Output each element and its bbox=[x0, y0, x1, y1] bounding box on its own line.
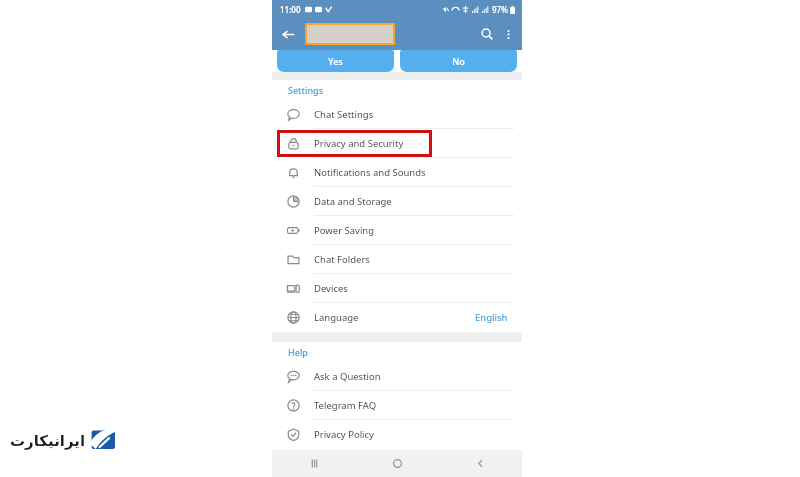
staticText: 97% bbox=[492, 4, 508, 15]
staticText: Chat Folders bbox=[314, 253, 370, 266]
button[interactable]: Chat Folders bbox=[272, 245, 522, 274]
staticText: English bbox=[475, 311, 508, 324]
staticText: Data and Storage bbox=[314, 195, 392, 208]
button[interactable]: Privacy and Security bbox=[272, 129, 522, 158]
staticText: Settings bbox=[288, 84, 324, 96]
button[interactable]: Chat Settings bbox=[272, 100, 522, 129]
button[interactable]: Home bbox=[356, 450, 439, 477]
button[interactable]: Telegram FAQ bbox=[272, 391, 522, 420]
staticText: Privacy and Security bbox=[314, 137, 404, 150]
staticText: Ask a Question bbox=[314, 370, 381, 383]
staticText: Chat Settings bbox=[314, 108, 374, 121]
button[interactable]: Ask a Question bbox=[272, 362, 522, 391]
staticText: Notifications and Sounds bbox=[314, 166, 426, 179]
staticText: Power Saving bbox=[314, 224, 375, 237]
button[interactable]: Back bbox=[439, 450, 522, 477]
staticText: Help bbox=[288, 346, 308, 358]
button[interactable]: Recent apps bbox=[272, 450, 356, 477]
button[interactable]: Notifications and Sounds bbox=[272, 158, 522, 187]
staticText: No bbox=[452, 55, 465, 67]
button[interactable]: Back bbox=[277, 23, 299, 45]
staticText: ایرانیکارت bbox=[10, 432, 86, 449]
button[interactable]: Devices bbox=[272, 274, 522, 303]
button[interactable]: Language bbox=[272, 303, 522, 332]
staticText: Telegram FAQ bbox=[314, 399, 377, 412]
button[interactable]: More options bbox=[498, 24, 518, 44]
button[interactable]: No bbox=[400, 50, 517, 72]
button[interactable]: Power Saving bbox=[272, 216, 522, 245]
staticText: Devices bbox=[314, 282, 348, 295]
button[interactable]: Search bbox=[476, 23, 498, 45]
button[interactable]: Privacy Policy bbox=[272, 420, 522, 449]
staticText: Privacy Policy bbox=[314, 428, 374, 441]
button[interactable]: Yes bbox=[277, 50, 394, 72]
staticText: 11:00 bbox=[280, 4, 301, 15]
staticText: Yes bbox=[328, 55, 343, 67]
button[interactable]: Data and Storage bbox=[272, 187, 522, 216]
staticText: Language bbox=[314, 311, 359, 324]
